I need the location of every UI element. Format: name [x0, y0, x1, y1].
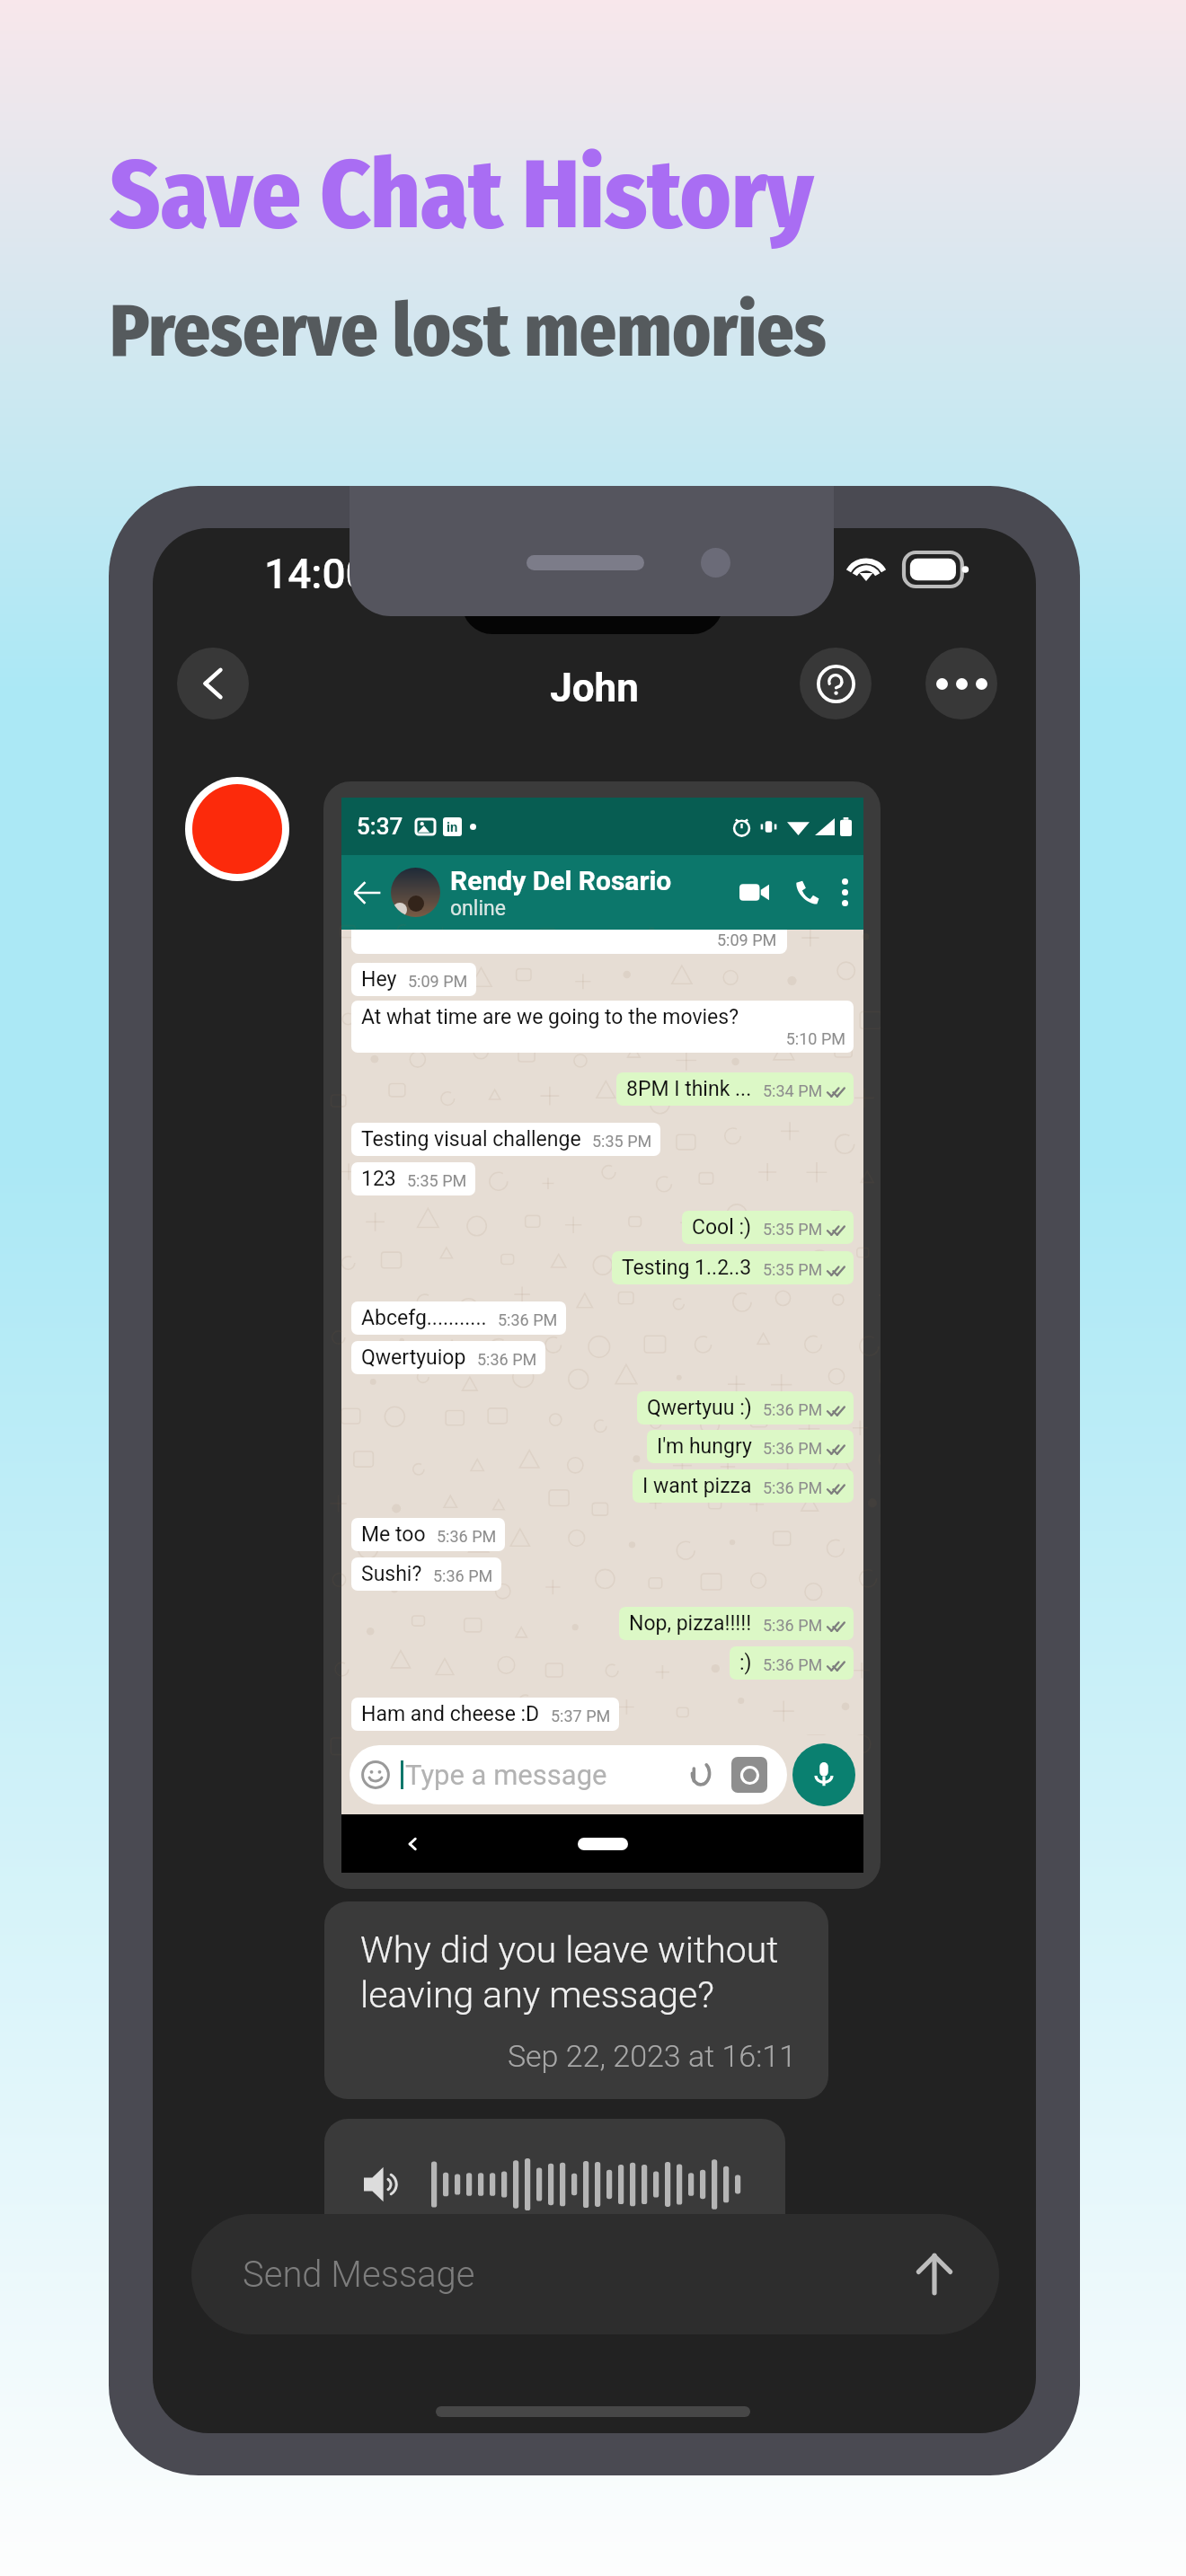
staticText: Save Chat History	[110, 137, 814, 252]
staticText: I'm hungry	[657, 1434, 752, 1459]
staticText: Nop, pizza!!!!!	[629, 1611, 752, 1636]
staticText: 123	[361, 1167, 396, 1191]
staticText: Why did you leave without leaving any me…	[360, 1928, 796, 2016]
button[interactable]: 5:37	[323, 781, 881, 1889]
staticText: 5:09 PM	[717, 931, 777, 949]
staticText: in	[447, 819, 458, 835]
staticText: Type a message	[405, 1759, 607, 1791]
staticText: 8PM I think ...	[626, 1077, 752, 1101]
staticText: 5:35 PM	[592, 1132, 652, 1151]
button[interactable]: Help	[800, 648, 872, 719]
staticText: Abcefg...........	[361, 1306, 487, 1330]
staticText: 5:36 PM	[477, 1350, 537, 1369]
staticText: 5:36 PM	[763, 1616, 823, 1635]
staticText: 5:35 PM	[763, 1220, 823, 1239]
staticText: Testing 1..2..3	[622, 1256, 752, 1280]
staticText: 14:00	[264, 550, 369, 598]
staticText: Rendy Del Rosario	[450, 865, 672, 896]
staticText: Sushi?	[361, 1562, 422, 1586]
staticText: Send Message	[243, 2254, 475, 2296]
button[interactable]	[324, 2119, 785, 2254]
staticText: 5:36 PM	[763, 1478, 823, 1497]
staticText: 5:35 PM	[763, 1260, 823, 1279]
staticText: 5:36 PM	[763, 1655, 823, 1674]
staticText: 5:36 PM	[437, 1527, 497, 1546]
staticText: Me too	[361, 1522, 426, 1547]
staticText: Sep 22, 2023 at 16:11	[360, 2038, 796, 2074]
staticText: 5:10 PM	[361, 1029, 845, 1048]
button[interactable]: More options	[925, 648, 997, 719]
staticText: 5:36 PM	[498, 1310, 558, 1329]
staticText: 5:37	[357, 813, 403, 840]
staticText: Hey	[361, 967, 397, 992]
staticText: 5:36 PM	[763, 1439, 823, 1458]
staticText: 5:09 PM	[408, 972, 468, 991]
staticText: At what time are we going to the movies?	[361, 1005, 739, 1029]
staticText: Preserve lost memories	[110, 287, 827, 375]
staticText: Cool :)	[692, 1215, 752, 1239]
staticText: 5:34 PM	[763, 1081, 823, 1100]
staticText: Ham and cheese :D	[361, 1702, 540, 1726]
button[interactable]: Send Message	[191, 2214, 999, 2334]
staticText: Qwertyuiop	[361, 1345, 466, 1370]
staticText: :)	[739, 1651, 752, 1675]
staticText: online	[450, 896, 506, 921]
button[interactable]: Why did you leave without leaving any me…	[324, 1901, 828, 2099]
staticText: Testing visual challenge	[361, 1127, 581, 1151]
staticText: Qwertyuu :)	[647, 1396, 752, 1420]
staticText: 5:36 PM	[433, 1566, 493, 1585]
staticText: 5:37 PM	[551, 1707, 611, 1725]
staticText: I want pizza	[642, 1474, 752, 1498]
button[interactable]: Back	[177, 648, 249, 719]
staticText: 5:36 PM	[763, 1400, 823, 1419]
staticText: 5:35 PM	[407, 1171, 467, 1190]
staticText: John	[153, 665, 1036, 711]
